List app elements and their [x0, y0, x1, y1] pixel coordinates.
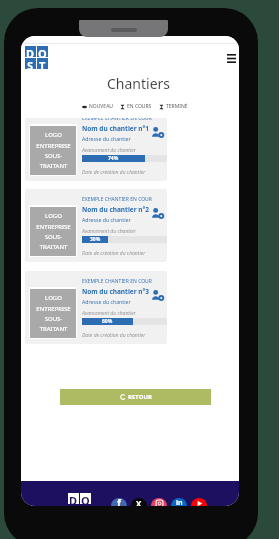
button[interactable]: X	[131, 498, 147, 506]
staticText: EXEMPLE CHANTIER EN COUR	[82, 196, 152, 203]
button[interactable]: Gérer les intervenants	[151, 207, 164, 220]
button[interactable]: Menu	[221, 48, 239, 69]
button[interactable]: LOGO ENTREPRISE SOUS- TRAITANT	[25, 189, 167, 262]
staticText: Chantiers	[107, 74, 171, 93]
button[interactable]: NOUVEAU	[82, 103, 113, 110]
staticText: D	[69, 493, 78, 504]
staticText: O	[38, 46, 47, 57]
staticText: f	[117, 498, 121, 506]
staticText: S	[27, 58, 34, 69]
button[interactable]: TERMINÉ	[159, 103, 188, 110]
button[interactable]: YouTube	[191, 498, 207, 506]
staticText: EXEMPLE CHANTIER EN COUR	[82, 118, 152, 122]
staticText: X	[136, 498, 142, 506]
staticText: O	[81, 493, 90, 504]
staticText: TERMINÉ	[166, 103, 188, 110]
button[interactable]: LOGO ENTREPRISE SOUS- TRAITANT	[25, 118, 167, 181]
staticText: Avancement du chantier	[82, 147, 136, 154]
button[interactable]: RETOUR	[60, 389, 211, 405]
staticText: Adresse du chantier	[82, 298, 131, 305]
staticText: 30%	[90, 236, 101, 243]
staticText: T	[39, 58, 46, 69]
button[interactable]: Facebook	[111, 498, 127, 506]
button[interactable]: Instagram	[151, 498, 167, 506]
button[interactable]: LinkedIn	[171, 498, 187, 506]
staticText: LOGO ENTREPRISE SOUS- TRAITANT	[36, 131, 71, 170]
staticText: Nom du chantier n°2	[82, 205, 150, 214]
staticText: Date de création du chantier	[82, 169, 146, 176]
button[interactable]: EN COURS	[120, 103, 152, 110]
button[interactable]: LOGO ENTREPRISE SOUS- TRAITANT	[25, 271, 167, 344]
staticText: D	[26, 46, 35, 57]
staticText: EXEMPLE CHANTIER EN COUR	[82, 278, 152, 285]
button[interactable]: Gérer les intervenants	[151, 289, 164, 302]
staticText: 74%	[108, 155, 119, 162]
staticText: Adresse du chantier	[82, 135, 131, 142]
staticText: Nom du chantier n°1	[82, 124, 150, 133]
staticText: RETOUR	[128, 393, 152, 401]
staticText: Date de création du chantier	[82, 332, 146, 339]
staticText: EN COURS	[127, 103, 152, 110]
staticText: Avancement du chantier	[82, 310, 136, 317]
staticText: Nom du chantier n°3	[82, 287, 150, 296]
staticText: NOUVEAU	[89, 103, 113, 110]
staticText: Date de création du chantier	[82, 250, 146, 257]
button[interactable]: Gérer les intervenants	[151, 126, 164, 139]
staticText: in	[176, 498, 183, 506]
staticText: Adresse du chantier	[82, 216, 131, 223]
staticText: 60%	[102, 318, 113, 325]
staticText: LOGO ENTREPRISE SOUS- TRAITANT	[36, 294, 71, 333]
staticText: Avancement du chantier	[82, 228, 136, 235]
staticText: LOGO ENTREPRISE SOUS- TRAITANT	[36, 212, 71, 251]
